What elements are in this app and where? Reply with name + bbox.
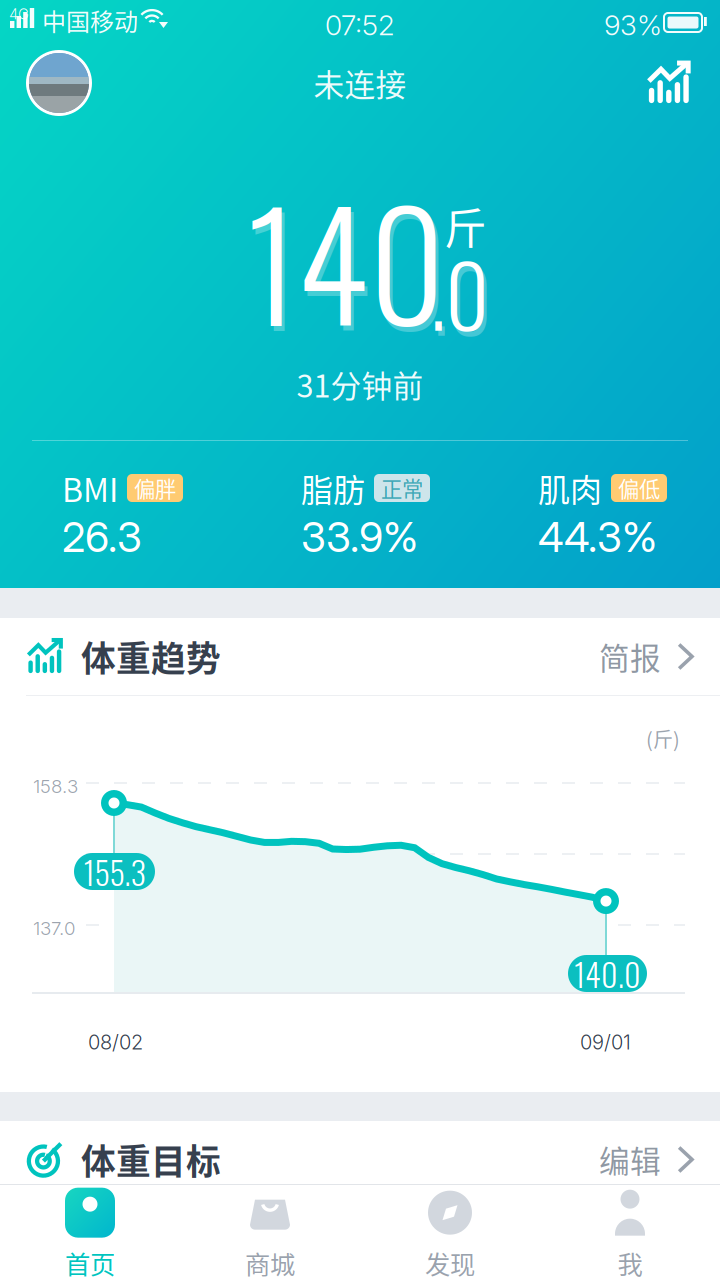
staticText: .0 <box>430 229 489 355</box>
staticText: 137.0 <box>33 917 76 940</box>
staticText: 31分钟前 <box>296 362 423 406</box>
staticText: 斤 <box>444 195 487 257</box>
staticText: 26.3 <box>62 512 142 562</box>
staticText: 偏低 <box>618 473 660 503</box>
button[interactable]: 商城 <box>180 1185 360 1280</box>
staticText: 我 <box>617 1245 642 1280</box>
button[interactable]: 发现 <box>360 1185 540 1280</box>
staticText: 商城 <box>245 1245 295 1280</box>
staticText: (斤) <box>646 724 680 753</box>
staticText: 肌肉 <box>538 465 602 511</box>
staticText: .0 <box>433 234 492 360</box>
staticText: 08/02 <box>88 1030 143 1054</box>
staticText: 44.3% <box>538 512 657 562</box>
staticText: 93% <box>604 8 662 42</box>
staticText: 4G <box>9 5 29 23</box>
button[interactable]: Profile <box>26 50 92 116</box>
staticText: 158.3 <box>33 775 78 798</box>
staticText: 简报 <box>599 634 661 679</box>
staticText: 体重目标 <box>81 1134 221 1185</box>
staticText: 33.9% <box>301 512 418 562</box>
staticText: 未连接 <box>313 61 406 105</box>
staticText: 首页 <box>65 1245 115 1280</box>
staticText: 脂肪 <box>301 465 365 511</box>
staticText: 140 <box>249 156 448 373</box>
staticText: 编辑 <box>599 1137 661 1182</box>
button[interactable]: 我 <box>540 1185 720 1280</box>
staticText: 140.0 <box>574 950 641 997</box>
staticText: 正常 <box>381 473 423 503</box>
staticText: BMI <box>62 465 118 511</box>
staticText: 09/01 <box>580 1030 631 1054</box>
staticText: 07:52 <box>325 8 395 42</box>
button[interactable]: 首页 <box>0 1185 180 1280</box>
staticText: 偏胖 <box>134 473 176 503</box>
button[interactable]: 体重趋势 <box>0 618 720 695</box>
staticText: 155.3 <box>83 848 145 895</box>
staticText: 体重趋势 <box>81 631 221 682</box>
staticText: 140 <box>246 151 445 368</box>
button[interactable]: Weight trends <box>640 54 698 112</box>
button[interactable]: 体重目标 <box>0 1121 720 1198</box>
staticText: 中国移动 <box>42 3 138 38</box>
staticText: 发现 <box>425 1245 475 1280</box>
